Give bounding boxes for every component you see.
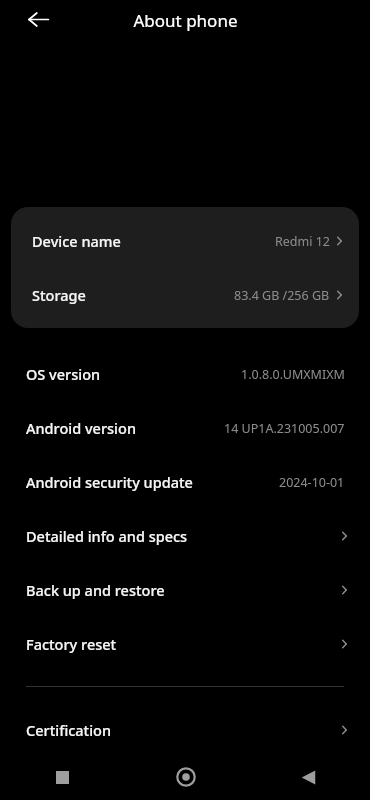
button[interactable]: Back up and restore [0,563,370,617]
button[interactable]: Back [21,2,55,36]
button[interactable]: Certification [0,703,370,757]
button[interactable]: Recents [0,754,124,800]
button[interactable]: Storage [11,268,359,322]
staticText: Android security update [26,472,193,492]
staticText: Detailed info and specs [26,526,188,546]
staticText: Certification [26,720,112,740]
staticText: About phone [133,9,238,32]
button[interactable]: Detailed info and specs [0,509,370,563]
staticText: Factory reset [26,634,117,654]
staticText: Back up and restore [26,580,165,600]
staticText: 14 UP1A.231005.007 [224,420,345,437]
staticText: Device name [32,231,121,251]
button[interactable]: Android security update [0,455,370,509]
button[interactable]: OS version [0,347,370,401]
staticText: 1.0.8.0.UMXMIXM [241,366,345,383]
button[interactable]: Back [247,754,370,800]
staticText: 83.4 GB /256 GB [234,287,330,304]
button[interactable]: Home [124,754,247,800]
staticText: Storage [32,285,86,305]
staticText: 2024-10-01 [279,474,345,491]
button[interactable]: Factory reset [0,617,370,671]
button[interactable]: Device name [11,214,359,268]
staticText: Android version [26,418,136,438]
button[interactable]: Android version [0,401,370,455]
staticText: Redmi 12 [275,233,330,250]
staticText: OS version [26,364,101,384]
